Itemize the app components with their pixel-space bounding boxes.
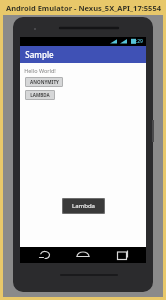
button[interactable]: Back [31, 247, 59, 263]
button[interactable]: Home [69, 247, 97, 263]
button[interactable]: LAMBDA [25, 90, 55, 100]
staticText: ANONYMITY [30, 79, 59, 85]
button[interactable]: ANONYMITY [25, 77, 63, 87]
button[interactable]: Recents [108, 247, 136, 263]
staticText: Sample [25, 49, 54, 60]
staticText: 7:29 [133, 38, 143, 45]
staticText: LAMBDA [30, 92, 50, 98]
staticText: Hello World! [24, 67, 56, 74]
staticText: Android Emulator - Nexus_5X_API_17:5554 [6, 3, 161, 13]
staticText: Lambda [72, 202, 95, 210]
